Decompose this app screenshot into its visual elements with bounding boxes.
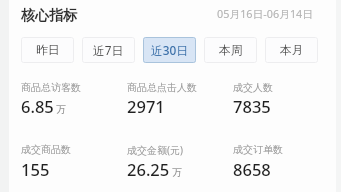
staticText: 8658: [233, 158, 271, 180]
staticText: 26.25: [127, 158, 170, 180]
staticText: 成交金额(元): [127, 143, 183, 157]
button[interactable]: 本周: [204, 37, 257, 63]
staticText: 万: [172, 166, 182, 179]
button[interactable]: Change date range: [213, 2, 318, 25]
button[interactable]: 近7日: [82, 37, 135, 63]
staticText: 商品总访客数: [21, 81, 81, 94]
button[interactable]: 成交订单数: [233, 130, 339, 192]
staticText: 近7日: [93, 42, 124, 58]
staticText: 成交人数: [233, 81, 273, 94]
staticText: 成交订单数: [233, 143, 283, 156]
staticText: 6.85: [21, 95, 54, 117]
staticText: 昨日: [36, 43, 60, 58]
button[interactable]: 成交人数: [233, 0, 339, 130]
staticText: 商品总点击人数: [127, 81, 197, 94]
button[interactable]: 近30日: [143, 37, 196, 63]
staticText: 本周: [219, 43, 243, 58]
staticText: 155: [21, 158, 50, 180]
button[interactable]: 成交金额(元): [127, 130, 233, 192]
button[interactable]: 成交商品数: [21, 130, 127, 192]
staticText: 本月: [280, 43, 304, 58]
button[interactable]: 本月: [265, 37, 318, 63]
staticText: 2971: [127, 95, 165, 117]
staticText: 核心指标: [21, 7, 77, 25]
staticText: 7835: [233, 95, 271, 117]
staticText: 近30日: [151, 42, 189, 58]
button[interactable]: 商品总访客数: [21, 0, 127, 130]
button[interactable]: 商品总点击人数: [127, 0, 233, 130]
staticText: 05月16日-06月14日: [217, 6, 314, 21]
staticText: 成交商品数: [21, 143, 71, 156]
button[interactable]: 昨日: [21, 37, 74, 63]
staticText: 万: [56, 103, 66, 116]
